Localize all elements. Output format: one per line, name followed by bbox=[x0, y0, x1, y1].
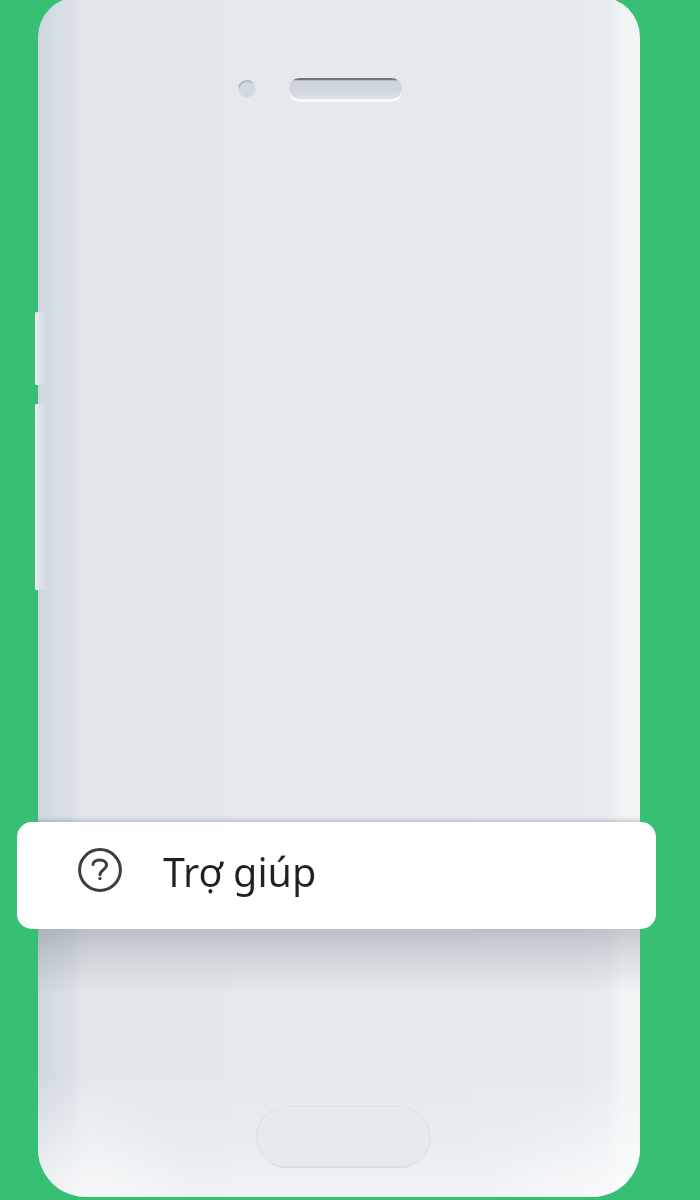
staticText: Trợ giúp bbox=[163, 845, 317, 899]
button[interactable]: Help bbox=[17, 822, 656, 929]
other: Help bbox=[78, 848, 122, 892]
